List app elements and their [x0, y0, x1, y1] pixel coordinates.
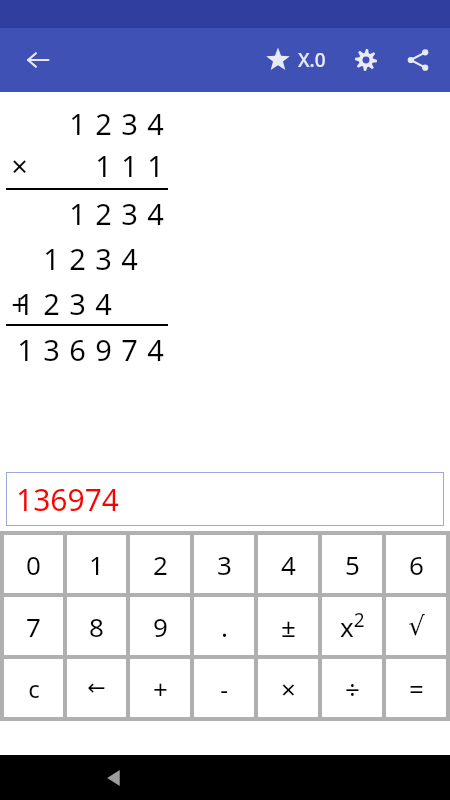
staticText: 4: [147, 104, 164, 143]
staticText: ×: [281, 671, 296, 706]
staticText: 3: [69, 284, 86, 323]
staticText: ←: [87, 675, 106, 701]
staticText: 2: [153, 547, 168, 582]
button[interactable]: =: [386, 659, 446, 717]
staticText: 9: [95, 330, 112, 369]
staticText: 8: [89, 609, 104, 644]
button[interactable]: x2: [322, 597, 382, 655]
button[interactable]: ×: [258, 659, 318, 717]
staticText: ÷: [345, 671, 360, 706]
button[interactable]: 1: [67, 535, 126, 593]
button[interactable]: ←: [67, 659, 126, 717]
staticText: √: [408, 611, 425, 641]
staticText: 1: [17, 284, 34, 323]
button[interactable]: +: [130, 659, 190, 717]
button[interactable]: 8: [67, 597, 126, 655]
staticText: ×: [11, 146, 28, 185]
staticText: 3: [95, 239, 112, 278]
button[interactable]: Settings: [342, 36, 390, 84]
staticText: 5: [345, 547, 360, 582]
staticText: 1: [95, 146, 112, 185]
staticText: 9: [153, 609, 168, 644]
button[interactable]: √: [386, 597, 446, 655]
staticText: 4: [147, 330, 164, 369]
staticText: ±: [281, 609, 296, 644]
button[interactable]: X.0: [262, 36, 330, 84]
button[interactable]: Back: [90, 755, 138, 800]
staticText: 1: [43, 239, 60, 278]
staticText: +: [153, 671, 168, 706]
staticText: 136974: [16, 479, 119, 520]
button[interactable]: 2: [130, 535, 190, 593]
staticText: .: [221, 609, 228, 644]
staticText: 7: [26, 609, 41, 644]
staticText: 4: [95, 284, 112, 323]
button[interactable]: 136974: [6, 472, 444, 526]
button[interactable]: 9: [130, 597, 190, 655]
staticText: 2: [95, 104, 112, 143]
staticText: 4: [281, 547, 296, 582]
button[interactable]: Back: [14, 36, 62, 84]
staticText: c: [28, 672, 40, 705]
staticText: -: [220, 672, 228, 705]
staticText: 6: [409, 547, 424, 582]
staticText: 0: [26, 547, 41, 582]
staticText: 2: [43, 284, 60, 323]
staticText: 3: [217, 547, 232, 582]
button[interactable]: 3: [194, 535, 254, 593]
staticText: 4: [147, 194, 164, 233]
staticText: 1: [89, 547, 104, 582]
button[interactable]: 7: [4, 597, 63, 655]
button[interactable]: 4: [258, 535, 318, 593]
button[interactable]: 6: [386, 535, 446, 593]
staticText: 1: [121, 146, 138, 185]
staticText: X.0: [298, 47, 326, 73]
staticText: 2: [95, 194, 112, 233]
staticText: 6: [69, 330, 86, 369]
button[interactable]: .: [194, 597, 254, 655]
staticText: 4: [121, 239, 138, 278]
staticText: 1: [69, 194, 86, 233]
staticText: +: [11, 284, 28, 323]
staticText: x2: [340, 607, 365, 645]
staticText: 3: [43, 330, 60, 369]
button[interactable]: ÷: [322, 659, 382, 717]
staticText: 1: [17, 330, 34, 369]
button[interactable]: 5: [322, 535, 382, 593]
staticText: 3: [121, 194, 138, 233]
button[interactable]: c: [4, 659, 63, 717]
button[interactable]: 0: [4, 535, 63, 593]
button[interactable]: Share: [394, 36, 442, 84]
staticText: 1: [147, 146, 164, 185]
staticText: 2: [69, 239, 86, 278]
button[interactable]: ±: [258, 597, 318, 655]
staticText: 3: [121, 104, 138, 143]
staticText: 7: [121, 330, 138, 369]
staticText: =: [409, 671, 424, 706]
button[interactable]: -: [194, 659, 254, 717]
staticText: 1: [69, 104, 86, 143]
